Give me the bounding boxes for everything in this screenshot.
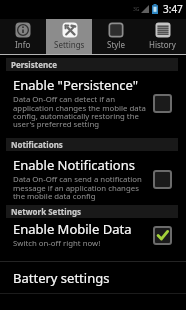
- staticText: Battery settings: [13, 269, 110, 287]
- button[interactable]: Battery settings: [0, 262, 186, 293]
- staticText: Settings: [54, 39, 85, 50]
- staticText: Enable "Persistence": [13, 76, 139, 94]
- staticText: Style: [107, 39, 125, 50]
- staticText: Data On-Off can detect if an application…: [13, 94, 149, 129]
- button[interactable]: Disabled: [153, 170, 171, 188]
- staticText: Persistence: [11, 59, 58, 70]
- staticText: 3G: [133, 6, 140, 13]
- button[interactable]: Disabled: [153, 94, 171, 112]
- button[interactable]: Style: [92, 19, 139, 54]
- button[interactable]: Settings: [46, 19, 92, 54]
- button[interactable]: Info: [0, 19, 46, 54]
- staticText: Network Settings: [11, 206, 82, 217]
- staticText: Switch on-off right now!: [13, 238, 101, 249]
- button[interactable]: Enabled: [153, 226, 171, 244]
- staticText: Data On-Off can send a notification mess…: [13, 174, 149, 201]
- staticText: Notifications: [11, 139, 63, 150]
- staticText: Info: [15, 39, 31, 50]
- staticText: Enable Notifications: [13, 156, 135, 174]
- button[interactable]: History: [139, 19, 186, 54]
- staticText: 3:47: [163, 2, 183, 16]
- staticText: History: [149, 39, 176, 50]
- button[interactable]: Enable "Persistence": [0, 71, 186, 129]
- button[interactable]: Enable Mobile Data: [0, 218, 186, 249]
- staticText: Enable Mobile Data: [13, 220, 132, 238]
- button[interactable]: Enable Notifications: [0, 151, 186, 201]
